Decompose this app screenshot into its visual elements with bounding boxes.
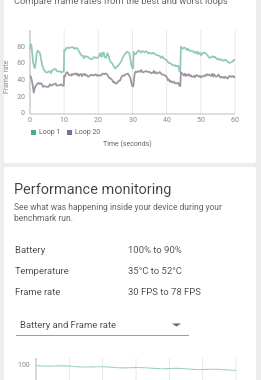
staticText: 40 bbox=[159, 116, 175, 124]
staticText: 20 bbox=[90, 116, 106, 124]
staticText: Frame rate bbox=[15, 286, 61, 297]
staticText: 10 bbox=[56, 116, 72, 124]
staticText: Temperature bbox=[15, 265, 69, 276]
staticText: 30 bbox=[125, 116, 141, 124]
staticText: Compare frame rates from the best and wo… bbox=[14, 0, 228, 6]
staticText: 0 bbox=[13, 109, 25, 117]
staticText: 100% to 90% bbox=[128, 244, 182, 255]
staticText: Battery and Frame rate bbox=[20, 319, 172, 330]
staticText: 50 bbox=[193, 116, 209, 124]
staticText: See what was happening inside your devic… bbox=[14, 202, 222, 223]
staticText: 30 FPS to 78 FPS bbox=[128, 286, 201, 297]
staticText: Loop 1 bbox=[39, 128, 61, 136]
staticText: 60 bbox=[227, 116, 243, 124]
staticText: 20 bbox=[13, 93, 25, 101]
button[interactable]: Battery and Frame rate bbox=[16, 313, 190, 336]
staticText: Time (seconds) bbox=[103, 140, 152, 148]
staticText: Frame rate bbox=[2, 60, 10, 94]
staticText: 35°C to 52°C bbox=[128, 265, 182, 276]
staticText: 100 bbox=[18, 361, 30, 369]
staticText: 0 bbox=[22, 116, 38, 124]
staticText: 60 bbox=[13, 59, 25, 67]
staticText: Performance monitoring bbox=[14, 181, 172, 198]
staticText: 40 bbox=[13, 76, 25, 84]
staticText: Battery bbox=[15, 244, 46, 255]
staticText: 80 bbox=[13, 43, 25, 51]
staticText: Loop 20 bbox=[75, 128, 101, 136]
